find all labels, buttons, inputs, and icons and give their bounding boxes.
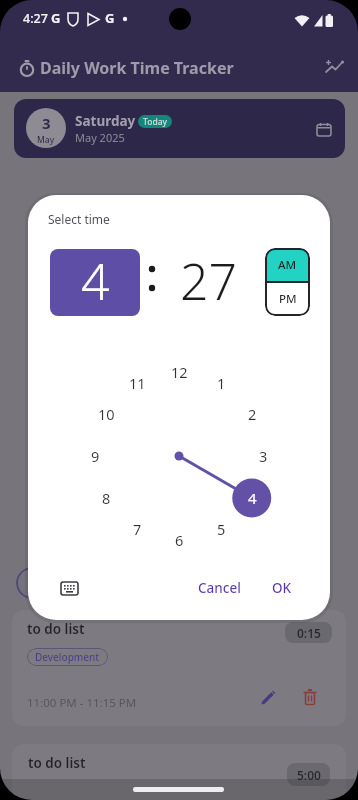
- staticText: to do list: [28, 754, 86, 772]
- button[interactable]: [256, 685, 280, 709]
- button[interactable]: 4: [50, 249, 140, 316]
- staticText: 6: [175, 530, 184, 550]
- staticText: May 2025: [75, 130, 125, 145]
- staticText: 4: [81, 249, 110, 314]
- staticText: G: [51, 9, 61, 27]
- staticText: 3: [259, 446, 268, 466]
- staticText: 4:27: [23, 10, 48, 27]
- staticText: 9: [91, 446, 100, 466]
- staticText: 5: [217, 519, 226, 539]
- button[interactable]: [298, 685, 322, 709]
- button[interactable]: 3: [14, 99, 345, 158]
- staticText: 8: [102, 488, 111, 508]
- staticText: 2: [248, 404, 257, 424]
- staticText: Select time: [48, 211, 110, 227]
- button[interactable]: PM: [265, 282, 310, 316]
- button[interactable]: [320, 52, 350, 82]
- staticText: Cancel: [198, 579, 241, 597]
- staticText: to do list: [27, 620, 85, 638]
- button[interactable]: to do list: [12, 610, 346, 726]
- button[interactable]: AM: [265, 248, 310, 282]
- staticText: PM: [279, 291, 297, 307]
- staticText: 11:00 PM - 11:15 PM: [27, 695, 137, 711]
- staticText: 4: [248, 488, 257, 508]
- button[interactable]: 27: [159, 249, 259, 316]
- staticText: OK: [272, 579, 292, 597]
- staticText: AM: [278, 257, 297, 273]
- staticText: 10: [98, 404, 115, 424]
- staticText: 5:00: [297, 767, 321, 783]
- staticText: 11: [129, 373, 146, 393]
- staticText: Saturday: [75, 112, 136, 130]
- staticText: G: [105, 9, 115, 27]
- button[interactable]: OK: [265, 575, 299, 601]
- button[interactable]: [57, 576, 81, 600]
- button[interactable]: [310, 115, 338, 143]
- staticText: Development: [35, 650, 100, 664]
- staticText: Today: [143, 116, 167, 128]
- staticText: 3: [42, 113, 51, 133]
- staticText: 12: [171, 362, 188, 382]
- staticText: 1: [217, 373, 226, 393]
- staticText: Daily Work Time Tracker: [40, 57, 234, 79]
- button[interactable]: Cancel: [193, 575, 245, 601]
- staticText: 7: [133, 519, 142, 539]
- staticText: 27: [180, 247, 238, 314]
- button[interactable]: to do list: [12, 744, 346, 800]
- button[interactable]: Development: [27, 648, 108, 666]
- staticText: May: [37, 134, 55, 146]
- staticText: 0:15: [297, 625, 321, 641]
